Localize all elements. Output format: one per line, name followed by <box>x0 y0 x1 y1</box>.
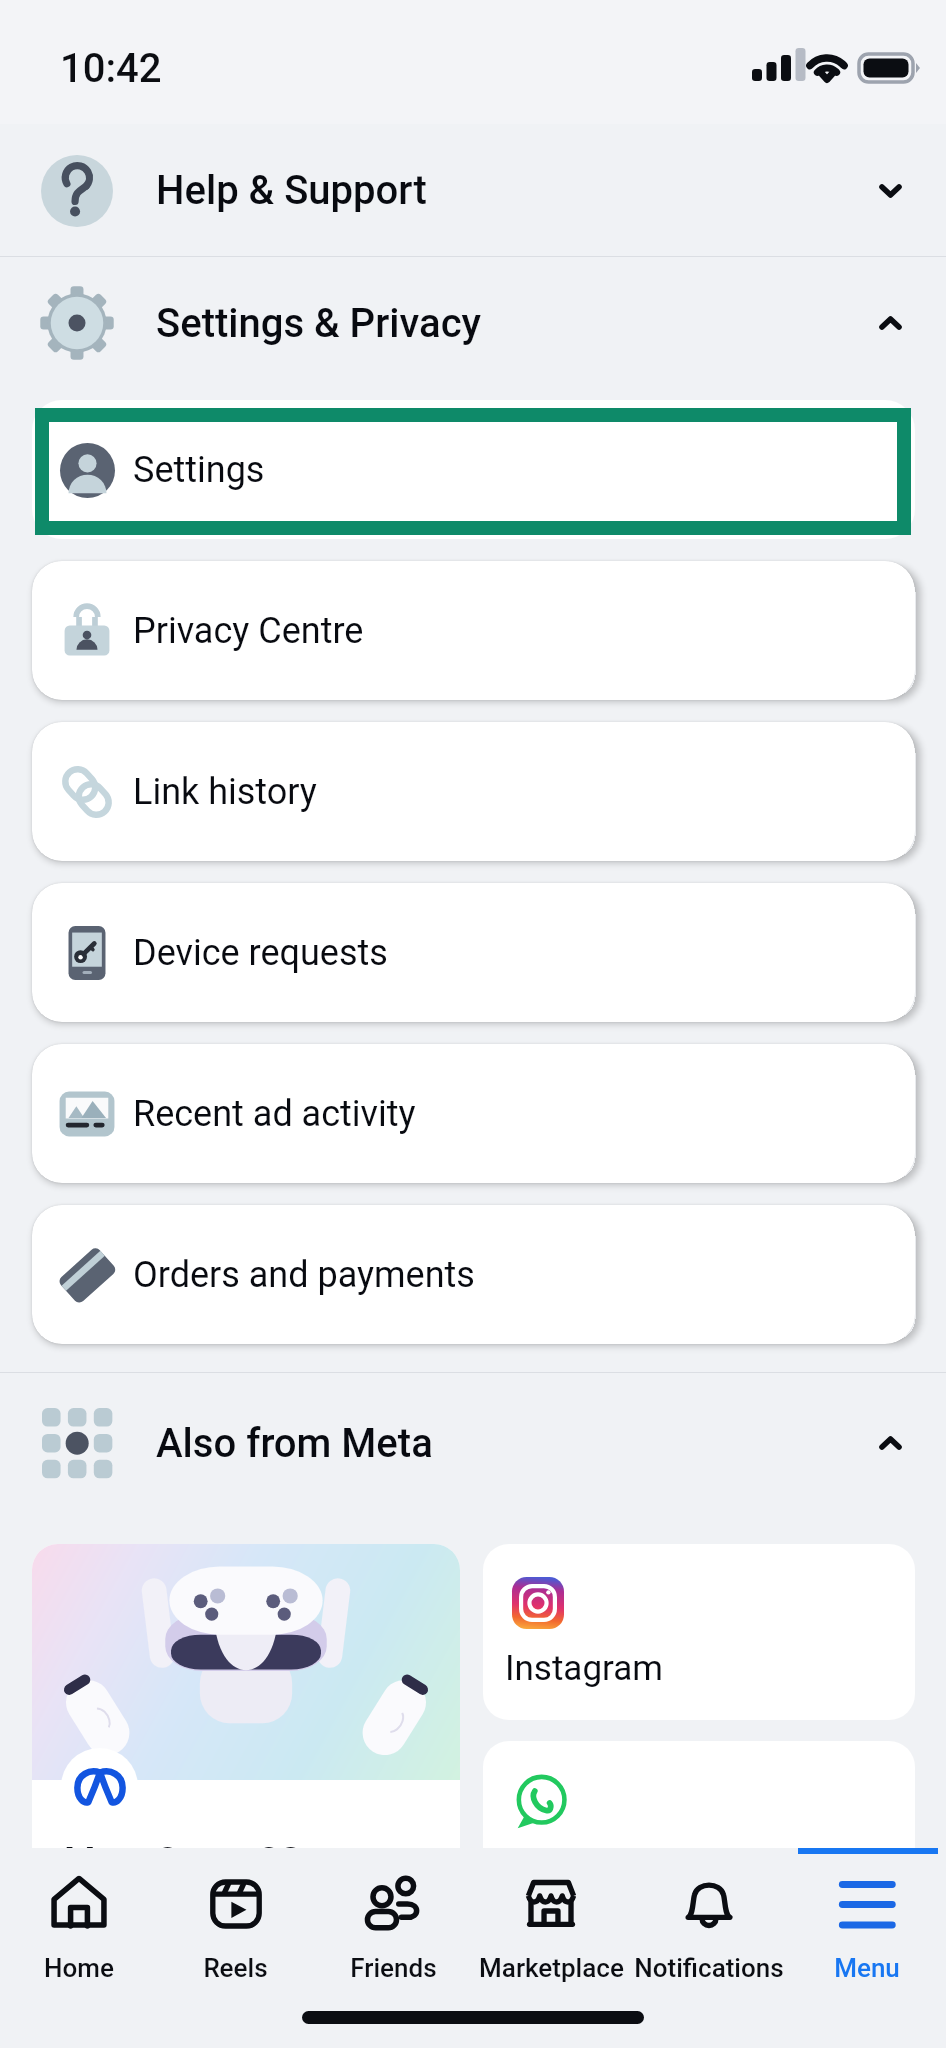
other: Notifications <box>680 1875 738 1933</box>
staticText: Also from Meta <box>156 1420 433 1467</box>
button[interactable]: Menu <box>788 1867 946 1982</box>
button[interactable]: Marketplace <box>472 1867 630 1982</box>
other: Home <box>50 1875 108 1933</box>
staticText: Instagram <box>505 1648 663 1689</box>
other: Friends <box>364 1875 422 1933</box>
button[interactable]: Help & Support <box>0 125 946 256</box>
button[interactable]: Orders and payments <box>32 1205 915 1344</box>
button[interactable]: Privacy Centre <box>32 561 915 700</box>
button[interactable]: Instagram <box>483 1544 915 1720</box>
staticText: Friends <box>350 1953 437 1982</box>
other: Reels <box>207 1875 265 1933</box>
button[interactable]: Device requests <box>32 883 915 1022</box>
staticText: Notifications <box>634 1953 784 1982</box>
button[interactable]: Notifications <box>630 1867 788 1982</box>
staticText: 10:42 <box>60 45 162 92</box>
staticText: Help & Support <box>156 167 427 214</box>
other: Marketplace <box>522 1875 580 1933</box>
staticText: Device requests <box>133 932 388 974</box>
button[interactable]: Friends <box>314 1867 472 1982</box>
button[interactable]: Reels <box>157 1867 314 1982</box>
staticText: Privacy Centre <box>133 610 364 652</box>
staticText: Settings & Privacy <box>156 300 482 347</box>
other: Menu <box>838 1875 896 1933</box>
staticText: Menu <box>834 1953 900 1982</box>
staticText: Reels <box>203 1953 268 1982</box>
staticText: Orders and payments <box>133 1254 475 1296</box>
button[interactable]: Also from Meta <box>0 1373 946 1513</box>
staticText: Link history <box>133 771 317 813</box>
button[interactable]: WhatsApp <box>483 1741 915 1917</box>
staticText: Marketplace <box>479 1953 624 1982</box>
button[interactable]: Recent ad activity <box>32 1044 915 1183</box>
staticText: Settings <box>133 449 265 491</box>
button[interactable]: Settings <box>32 400 915 539</box>
button[interactable]: Home <box>0 1867 157 1982</box>
button[interactable]: Meta Quest 3S <box>32 1544 460 1874</box>
staticText: Recent ad activity <box>133 1093 416 1135</box>
staticText: Home <box>44 1953 114 1982</box>
button[interactable]: Settings & Privacy <box>0 257 946 389</box>
staticText: Meta Quest 3S <box>64 1840 302 1874</box>
staticText: WhatsApp <box>505 1850 667 1891</box>
button[interactable]: Link history <box>32 722 915 861</box>
